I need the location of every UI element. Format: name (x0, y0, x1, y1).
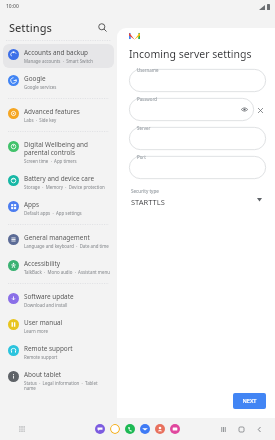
button[interactable]: Password (129, 98, 254, 121)
staticText: Accessibility (24, 259, 61, 268)
button[interactable]: Accessibility (3, 255, 114, 279)
staticText: Default apps · App settings (24, 210, 82, 216)
staticText: Username (137, 67, 159, 73)
button[interactable]: Google (3, 70, 114, 94)
button[interactable]: General management (3, 229, 114, 253)
button[interactable]: Home (236, 424, 247, 435)
staticText: Google services (24, 84, 57, 90)
button[interactable]: Apps (3, 196, 114, 220)
staticText: Labs · Side key (24, 117, 57, 123)
button[interactable]: Notes (110, 424, 120, 434)
button[interactable]: All apps (16, 423, 28, 435)
button[interactable]: Phone (125, 424, 135, 434)
staticText: Incoming server settings (129, 47, 252, 61)
staticText: Google (24, 74, 46, 83)
staticText: Battery and device care (24, 174, 95, 183)
staticText: STARTTLS (131, 197, 165, 207)
staticText: Remote support (24, 344, 73, 353)
staticText: About tablet (24, 370, 62, 379)
button[interactable]: Messages (95, 424, 105, 434)
button[interactable]: Port (129, 156, 266, 179)
staticText: Port (137, 154, 146, 160)
staticText: Server (137, 125, 151, 131)
staticText: Status · Legal information · Tablet name (24, 380, 110, 392)
button[interactable]: Back (254, 424, 265, 435)
button[interactable]: Security type (129, 187, 266, 208)
button[interactable]: Contacts (155, 424, 165, 434)
staticText: Security type (131, 188, 159, 194)
staticText: Screen time · App timers (24, 158, 77, 164)
button[interactable]: Show password (240, 105, 249, 114)
staticText: Accounts and backup (24, 48, 89, 57)
staticText: 10:00 (6, 3, 19, 10)
button[interactable]: Accounts and backup (3, 44, 114, 68)
staticText: TalkBack · Mono audio · Assistant menu (24, 269, 110, 275)
button[interactable]: Software update (3, 288, 114, 312)
button[interactable]: Clear password (254, 104, 266, 116)
button[interactable]: Chat (140, 424, 150, 434)
button[interactable]: Digital Wellbeing and parental controls (3, 136, 114, 168)
staticText: General management (24, 233, 90, 242)
staticText: Storage · Memory · Device protection (24, 184, 105, 190)
button[interactable]: Remote support (3, 340, 114, 364)
button[interactable]: Server (129, 127, 266, 150)
staticText: Learn more (24, 328, 48, 334)
staticText: Settings (9, 20, 52, 35)
button[interactable]: Recent apps (218, 424, 229, 435)
staticText: Apps (24, 200, 40, 209)
button[interactable]: User manual (3, 314, 114, 338)
staticText: Language and keyboard · Date and time (24, 243, 109, 249)
button[interactable]: Camera (170, 424, 180, 434)
staticText: NEXT (242, 397, 257, 405)
button[interactable]: NEXT (233, 393, 266, 409)
staticText: Manage accounts · Smart Switch (24, 58, 94, 64)
staticText: Remote support (24, 354, 58, 360)
staticText: Software update (24, 292, 74, 301)
button[interactable]: Search settings (94, 19, 110, 35)
staticText: Advanced features (24, 107, 80, 116)
button[interactable]: Username (129, 69, 266, 92)
button[interactable]: About tablet (3, 366, 114, 396)
staticText: Download and install (24, 302, 68, 308)
staticText: User manual (24, 318, 63, 327)
staticText: Password (137, 96, 157, 102)
button[interactable]: Battery and device care (3, 170, 114, 194)
staticText: Digital Wellbeing and parental controls (24, 140, 110, 157)
button[interactable]: Advanced features (3, 103, 114, 127)
